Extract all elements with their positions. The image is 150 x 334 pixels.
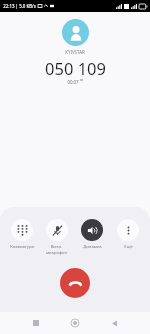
button[interactable]: Recents [28,315,44,331]
staticText: Ещё [124,244,133,250]
button[interactable]: Keypad [4,219,39,250]
staticText: Динамик [83,244,102,250]
button[interactable]: Mute microphone [39,219,74,256]
button[interactable]: End call [60,268,90,298]
staticText: Клавиатура [10,244,34,250]
button[interactable]: Back [106,315,122,331]
staticText: Выкл. микрофон [40,244,73,256]
staticText: 050 109 [45,57,106,79]
button[interactable]: More options [110,219,146,250]
staticText: 22:13 | 5.0 KB/s [3,3,36,9]
button[interactable]: Home [67,315,83,331]
staticText: KYIVSTAR [65,49,85,55]
staticText: 00:07 [67,79,79,85]
button[interactable]: Speaker [74,219,110,250]
